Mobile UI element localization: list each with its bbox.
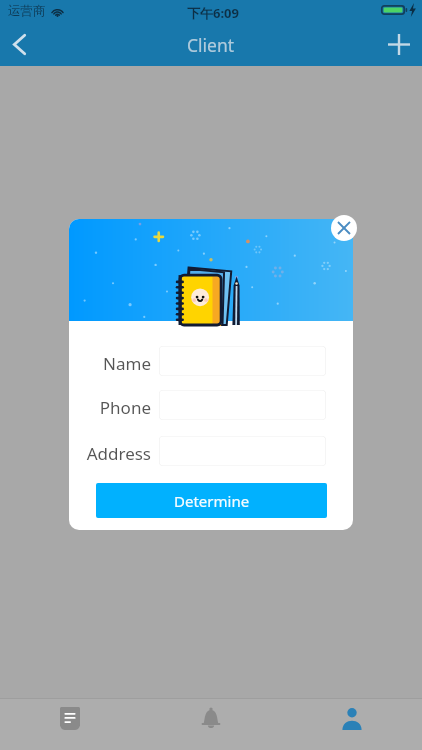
button[interactable]: Profile (281, 699, 422, 750)
staticText: Name (69, 352, 151, 375)
staticText: Determine (174, 491, 250, 511)
staticText: 下午6:09 (187, 4, 239, 22)
button[interactable]: List (0, 699, 140, 750)
button[interactable]: Close (331, 215, 357, 241)
button[interactable]: Determine (96, 483, 327, 518)
staticText: Address (69, 442, 151, 465)
staticText: 运营商 (8, 3, 46, 19)
staticText: Phone (69, 396, 151, 419)
button[interactable]: Add (378, 22, 422, 66)
button[interactable]: Back (0, 22, 42, 66)
staticText: Client (187, 33, 235, 57)
button[interactable]: Notifications (140, 699, 281, 750)
